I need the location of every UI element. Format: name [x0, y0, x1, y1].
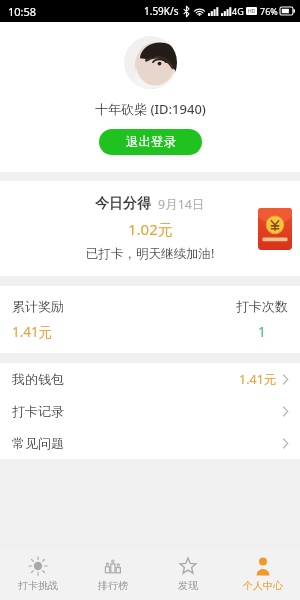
staticText: 10:58 — [8, 4, 37, 19]
staticText: 打卡次数 — [236, 298, 288, 314]
staticText: 1.41元 — [239, 371, 277, 388]
button[interactable]: 排行榜 — [75, 548, 150, 600]
staticText: 打卡记录 — [12, 403, 64, 419]
staticText: 9月14日 — [158, 196, 205, 213]
staticText: 发现 — [178, 579, 198, 592]
staticText: 1.59K/s — [144, 4, 179, 18]
button[interactable]: 发现 — [150, 548, 225, 600]
staticText: 今日分得 — [95, 195, 151, 213]
button[interactable]: 累计奖励 — [0, 298, 150, 341]
staticText: 十年砍柴 (ID:1940) — [95, 100, 206, 118]
staticText: 退出登录 — [126, 134, 176, 150]
staticText: 已打卡，明天继续加油! — [86, 245, 215, 262]
button[interactable]: 退出登录 — [99, 129, 202, 155]
button[interactable]: 打卡次数 — [150, 298, 300, 341]
staticText: 1.02元 — [128, 219, 173, 239]
button[interactable]: 个人中心 — [225, 548, 300, 600]
staticText: 个人中心 — [243, 579, 283, 592]
staticText: 1.41元 — [12, 323, 53, 341]
staticText: 4G — [232, 5, 244, 17]
button[interactable]: 我的钱包 — [0, 363, 300, 395]
button[interactable]: 打卡挑战 — [0, 548, 75, 600]
staticText: 76% — [260, 5, 278, 17]
staticText: 累计奖励 — [12, 298, 64, 314]
staticText: 打卡挑战 — [18, 579, 58, 592]
button[interactable]: 常见问题 — [0, 427, 300, 459]
staticText: 排行榜 — [98, 579, 128, 592]
staticText: 1 — [258, 323, 266, 341]
staticText: 我的钱包 — [12, 371, 64, 387]
staticText: 常见问题 — [12, 435, 64, 451]
button[interactable]: Red packet — [258, 208, 292, 250]
staticText: HD — [248, 8, 256, 15]
button[interactable]: Profile photo — [124, 36, 177, 89]
button[interactable]: 打卡记录 — [0, 395, 300, 427]
